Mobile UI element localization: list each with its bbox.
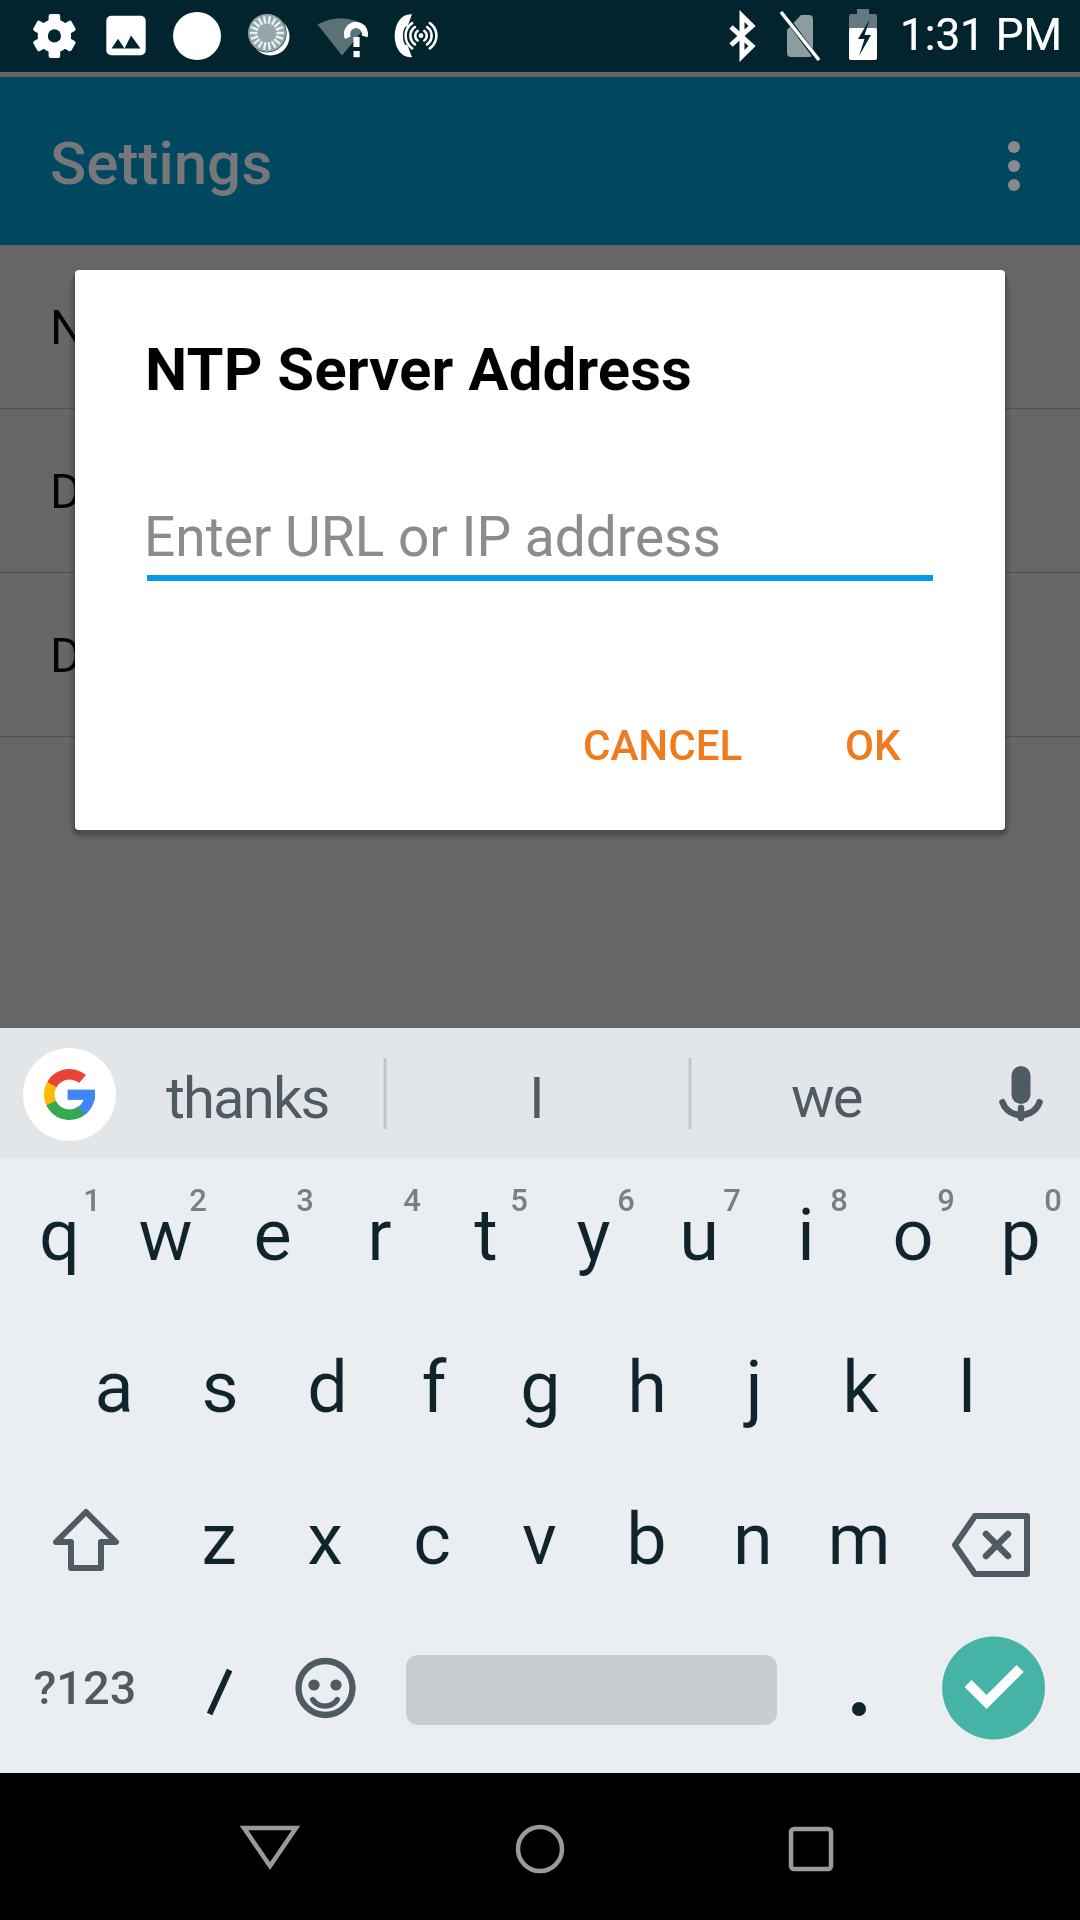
button[interactable]: g <box>486 1342 594 1432</box>
staticText: w <box>138 1193 193 1277</box>
staticText: 2 <box>189 1182 207 1218</box>
button[interactable]: 7 <box>678 1155 786 1245</box>
staticText: l <box>958 1345 976 1429</box>
staticText: c <box>413 1497 451 1581</box>
staticText: Display Seconds <box>50 627 402 683</box>
button[interactable]: i <box>752 1190 860 1280</box>
staticText: 8 <box>830 1182 848 1218</box>
staticText: g <box>520 1345 561 1429</box>
button[interactable]: o <box>859 1190 967 1280</box>
staticText: q <box>39 1193 80 1277</box>
staticText: u <box>679 1193 719 1277</box>
button[interactable]: Date Format <box>0 409 1080 572</box>
button[interactable]: 2 <box>144 1155 252 1245</box>
staticText: Settings <box>50 128 273 198</box>
staticText: d <box>307 1345 348 1429</box>
staticText: r <box>367 1193 392 1277</box>
button[interactable]: v <box>485 1494 593 1584</box>
staticText: 1:31 PM <box>900 9 1062 61</box>
button[interactable]: r <box>325 1190 433 1280</box>
staticText: ?123 <box>33 1660 137 1715</box>
staticText: i <box>797 1193 815 1277</box>
button[interactable]: x <box>271 1494 379 1584</box>
staticText: s <box>201 1345 239 1429</box>
staticText: OK <box>845 721 901 770</box>
staticText: e <box>253 1193 292 1277</box>
staticText: b <box>626 1497 667 1581</box>
button[interactable]: t <box>432 1190 540 1280</box>
button[interactable]: 6 <box>572 1155 680 1245</box>
button[interactable]: 5 <box>465 1155 573 1245</box>
button[interactable]: n <box>699 1494 807 1584</box>
button[interactable]: ?123 <box>0 1642 185 1732</box>
staticText: m <box>827 1497 891 1581</box>
button[interactable]: More options <box>978 125 1050 197</box>
staticText: 3 <box>296 1182 314 1218</box>
staticText: f <box>421 1345 447 1429</box>
staticText: CANCEL <box>583 721 743 770</box>
staticText: we <box>791 1063 862 1131</box>
button[interactable]: 8 <box>785 1155 893 1245</box>
staticText: n <box>733 1497 773 1581</box>
button[interactable]: 4 <box>358 1155 466 1245</box>
button[interactable]: j <box>700 1342 808 1432</box>
button[interactable]: u <box>645 1190 753 1280</box>
staticText: NTP Server Address <box>145 334 692 404</box>
staticText: x <box>307 1497 343 1581</box>
button[interactable]: 9 <box>892 1155 1000 1245</box>
button[interactable]: k <box>806 1342 914 1432</box>
button[interactable]: Home <box>480 1788 600 1908</box>
staticText: I <box>529 1064 545 1132</box>
button[interactable]: Display Seconds <box>0 573 1080 736</box>
button[interactable]: f <box>380 1342 488 1432</box>
button[interactable]: p <box>966 1190 1074 1280</box>
staticText: 0 <box>1044 1182 1062 1218</box>
staticText: v <box>522 1497 557 1581</box>
staticText: o <box>892 1193 934 1277</box>
staticText: 6 <box>617 1182 635 1218</box>
staticText: z <box>201 1497 237 1581</box>
staticText: k <box>842 1345 879 1429</box>
staticText: 1 <box>83 1182 101 1218</box>
staticText: h <box>627 1345 667 1429</box>
button[interactable]: d <box>273 1342 381 1432</box>
button[interactable]: y <box>539 1190 647 1280</box>
button[interactable]: OK <box>805 699 941 792</box>
staticText: j <box>745 1345 763 1429</box>
staticText: NTP Server Address <box>50 299 478 355</box>
staticText: t <box>474 1193 498 1277</box>
button[interactable]: Back <box>210 1788 330 1908</box>
button[interactable]: Google <box>23 1048 116 1141</box>
staticText: 7 <box>723 1182 741 1218</box>
button[interactable]: a <box>60 1342 168 1432</box>
staticText: p <box>1000 1193 1041 1277</box>
button[interactable]: 1 <box>38 1155 146 1245</box>
staticText: 4 <box>403 1182 421 1218</box>
staticText: a <box>94 1345 134 1429</box>
button[interactable]: s <box>166 1342 274 1432</box>
staticText: thanks <box>166 1064 329 1132</box>
staticText: y <box>576 1193 611 1277</box>
button[interactable]: 0 <box>999 1155 1080 1245</box>
staticText: Enter URL or IP address <box>144 505 721 569</box>
button[interactable]: h <box>593 1342 701 1432</box>
staticText: Date Format <box>50 463 315 519</box>
button[interactable]: z <box>165 1494 273 1584</box>
button[interactable]: NTP Server Address <box>0 245 1080 408</box>
button[interactable]: w <box>111 1190 219 1280</box>
button[interactable]: c <box>378 1494 486 1584</box>
button[interactable]: l <box>913 1342 1021 1432</box>
button[interactable]: 3 <box>251 1155 359 1245</box>
staticText: 5 <box>510 1182 528 1218</box>
button[interactable]: m <box>805 1494 913 1584</box>
button[interactable]: b <box>592 1494 700 1584</box>
button[interactable]: e <box>218 1190 326 1280</box>
staticText: 9 <box>937 1182 955 1218</box>
button[interactable]: q <box>5 1190 113 1280</box>
button[interactable]: Recent apps <box>751 1788 871 1908</box>
button[interactable]: CANCEL <box>543 699 783 792</box>
